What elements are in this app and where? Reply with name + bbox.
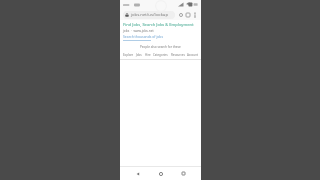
button[interactable]: Share (177, 11, 184, 18)
button[interactable]: More options (191, 11, 198, 18)
button[interactable]: Categories (152, 52, 169, 58)
staticText: Resources (171, 53, 185, 57)
staticText: Search thousands of jobs (123, 34, 164, 39)
button[interactable]: Home (155, 168, 166, 179)
staticText: Explore (123, 53, 134, 57)
staticText: Hire (145, 53, 151, 57)
button[interactable]: Explore (122, 52, 135, 58)
button[interactable]: Recent apps (178, 168, 189, 179)
button[interactable]: Back (132, 168, 143, 179)
button[interactable]: Search thousands of jobs (123, 34, 164, 41)
staticText: Jobs (136, 53, 142, 57)
staticText: People also search for these (140, 45, 181, 49)
staticText: Find Jobs, Search Jobs & Employment (123, 22, 194, 27)
button[interactable]: Tabs (184, 11, 191, 18)
staticText: Categories (153, 53, 168, 57)
button[interactable]: Hire (144, 52, 152, 58)
button[interactable]: Jobs (135, 52, 143, 58)
staticText: Account (187, 53, 198, 57)
button[interactable]: Resources (170, 52, 186, 58)
staticText: jobs.net/us/lookup (131, 12, 169, 18)
button[interactable]: Account (186, 52, 199, 58)
button[interactable]: jobs.net/us/lookup (123, 11, 175, 19)
staticText: jobs · www.jobs.net (123, 29, 154, 33)
